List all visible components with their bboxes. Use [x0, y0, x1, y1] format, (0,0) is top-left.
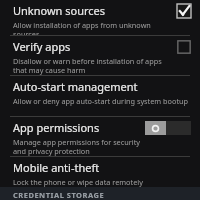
button[interactable]: Verify apps — [0, 36, 200, 75]
button[interactable]: Auto-start management — [0, 76, 200, 116]
staticText: Mobile anti-theft — [13, 160, 100, 175]
staticText: Auto-start management — [13, 79, 138, 94]
staticText: Allow or deny app auto-start during syst… — [13, 96, 189, 106]
staticText: CREDENTIAL STORAGE — [13, 190, 105, 200]
staticText: Verify apps — [13, 39, 71, 54]
staticText: Lock the phone or wipe data remotely — [13, 177, 143, 187]
button[interactable]: Enabled checkbox — [177, 4, 191, 18]
staticText: Disallow or warn before installation of … — [13, 56, 172, 75]
button[interactable]: App permissions toggle, off — [145, 121, 191, 135]
staticText: Unknown sources — [13, 3, 106, 18]
button[interactable]: CREDENTIAL STORAGE — [0, 187, 200, 200]
staticText: Manage app permissions for security and … — [13, 137, 140, 156]
button[interactable]: Disabled checkbox — [177, 40, 191, 54]
staticText: App permissions — [13, 120, 100, 135]
button[interactable]: App permissions — [0, 117, 200, 156]
button[interactable]: Mobile anti-theft — [0, 157, 200, 187]
staticText: Allow installation of apps from unknown … — [13, 20, 172, 35]
button[interactable]: Unknown sources — [0, 0, 200, 35]
